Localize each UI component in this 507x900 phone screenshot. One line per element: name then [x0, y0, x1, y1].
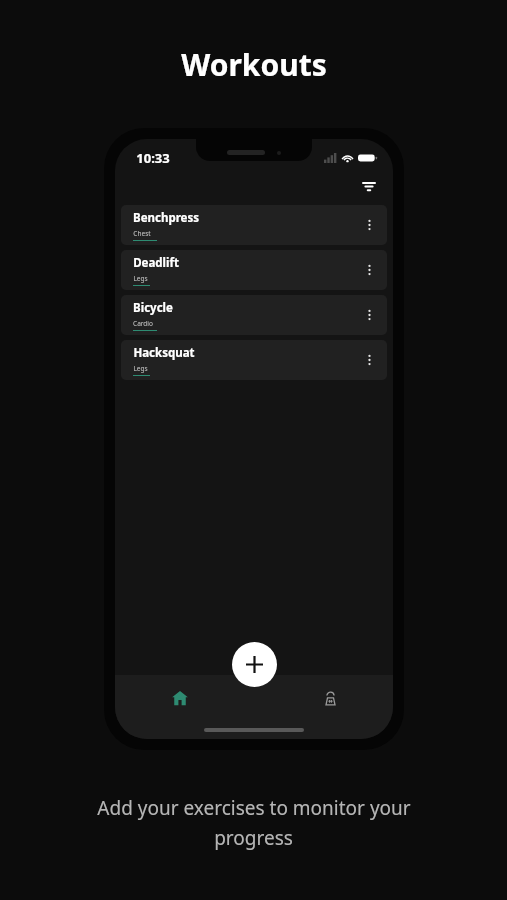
button[interactable]: More options for Hacksquat: [357, 348, 381, 372]
button[interactable]: Exercises: [313, 681, 347, 715]
button[interactable]: Filter: [355, 173, 383, 201]
staticText: Bicycle: [133, 300, 173, 316]
staticText: Legs: [133, 274, 148, 283]
button[interactable]: Hacksquat: [121, 340, 387, 380]
staticText: Chest: [133, 229, 151, 238]
staticText: Legs: [133, 364, 148, 373]
button[interactable]: Deadlift: [121, 250, 387, 290]
button[interactable]: Add workout: [232, 642, 277, 687]
staticText: Hacksquat: [133, 345, 195, 361]
staticText: Benchpress: [133, 210, 199, 226]
staticText: Workouts: [181, 44, 327, 85]
button[interactable]: Bicycle: [121, 295, 387, 335]
staticText: 10:33: [136, 149, 170, 167]
button[interactable]: More options for Bicycle: [357, 303, 381, 327]
button[interactable]: Benchpress: [121, 205, 387, 245]
button[interactable]: More options for Deadlift: [357, 258, 381, 282]
button[interactable]: Home: [163, 681, 197, 715]
button[interactable]: More options for Benchpress: [357, 213, 381, 237]
staticText: Deadlift: [133, 255, 179, 271]
staticText: Cardio: [133, 319, 153, 328]
staticText: Add your exercises to monitor your: [97, 795, 411, 821]
staticText: progress: [214, 825, 293, 851]
